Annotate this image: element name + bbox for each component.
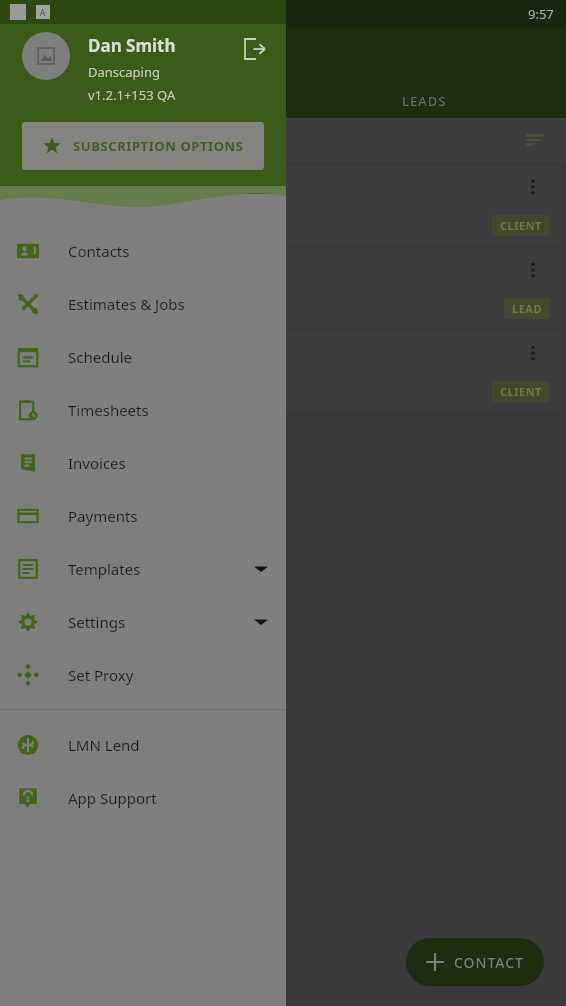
button[interactable]: Settings [0,595,286,648]
staticText: Payments [68,506,268,526]
staticText: lorida, 33315 [8,279,94,298]
staticText: LEADS [402,92,447,110]
button[interactable]: Payments [0,489,286,542]
staticText: Timesheets [68,400,268,420]
staticText: CLIENTS [112,92,171,110]
button[interactable]: Log out [238,32,272,66]
button[interactable]: Invoices [0,436,286,489]
staticText: 3126 [8,196,41,215]
button[interactable]: Timesheets [0,383,286,436]
button[interactable]: Contacts [0,224,286,277]
staticText: v1.2.1+153 QA [88,86,176,104]
button[interactable]: Set Proxy [0,648,286,701]
staticText: 9:57 [528,5,554,23]
button[interactable]: Sort [518,123,552,157]
staticText: SUBSCRIPTION OPTIONS [73,137,244,155]
staticText: Danscaping [88,63,160,81]
button[interactable]: 3126 [6,166,560,244]
button[interactable]: SUBSCRIPTION OPTIONS [22,122,264,170]
button[interactable]: LEADS [283,84,566,118]
button[interactable]: LMN Lend [0,718,286,771]
button[interactable]: lorida, 33315 [6,249,560,327]
button[interactable]: More options [516,253,550,287]
button[interactable]: More options [516,170,550,204]
button[interactable]: More options [516,336,550,370]
staticText: LEAD [512,301,542,316]
staticText: Settings [68,612,254,632]
button[interactable]: Estimates & Jobs [0,277,286,330]
staticText: CLIENT [500,218,542,233]
staticText: Dan Smith [88,34,176,57]
button[interactable]: Profile photo [22,32,70,80]
button[interactable]: CLIENTS [0,84,283,118]
staticText: A [40,7,46,18]
button[interactable]: CONTACT [406,938,544,986]
button[interactable]: App Support [0,771,286,824]
staticText: Invoices [68,453,268,473]
staticText: Contacts [68,241,268,261]
button[interactable]: More options [6,332,560,410]
staticText: LMN Lend [68,735,268,755]
staticText: App Support [68,788,268,808]
button[interactable]: Templates [0,542,286,595]
button[interactable]: Schedule [0,330,286,383]
staticText: CONTACT [454,953,524,972]
staticText: Estimates & Jobs [68,294,268,314]
staticText: Set Proxy [68,665,268,685]
staticText: Templates [68,559,254,579]
staticText: Schedule [68,347,268,367]
staticText: CLIENT [500,384,542,399]
